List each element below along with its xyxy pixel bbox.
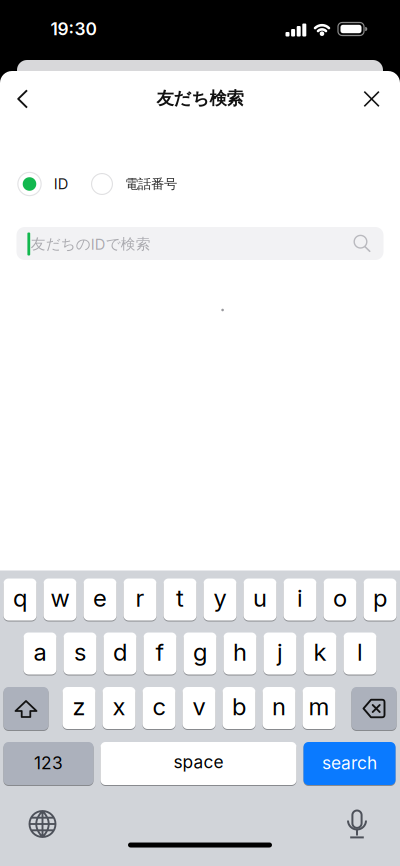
button[interactable]: j xyxy=(263,632,296,675)
button[interactable]: l xyxy=(343,632,376,675)
staticText: c xyxy=(152,692,165,720)
button[interactable]: b xyxy=(222,686,255,729)
staticText: j xyxy=(277,638,283,666)
staticText: r xyxy=(135,584,144,612)
staticText: 友だちのIDで検索 xyxy=(31,235,151,253)
staticText: search xyxy=(322,753,377,773)
staticText: z xyxy=(72,692,85,720)
button[interactable] xyxy=(335,802,379,846)
button[interactable]: q xyxy=(3,578,36,621)
staticText: w xyxy=(50,584,69,612)
button[interactable]: space xyxy=(100,741,296,785)
staticText: n xyxy=(272,692,286,720)
staticText: m xyxy=(308,692,329,720)
staticText: o xyxy=(333,584,347,612)
button[interactable]: p xyxy=(363,578,396,621)
button[interactable]: f xyxy=(143,632,176,675)
button[interactable]: m xyxy=(302,686,335,729)
button[interactable]: r xyxy=(123,578,156,621)
staticText: x xyxy=(112,692,125,720)
staticText: p xyxy=(373,584,387,612)
staticText: g xyxy=(193,638,207,666)
button[interactable]: 友だちのIDで検索 xyxy=(16,227,383,260)
button[interactable] xyxy=(20,802,64,846)
staticText: u xyxy=(253,584,267,612)
button[interactable]: t xyxy=(163,578,196,621)
staticText: 友だち検索 xyxy=(156,88,243,109)
button[interactable] xyxy=(1,77,45,121)
button[interactable]: a xyxy=(23,632,56,675)
button[interactable]: v xyxy=(182,686,215,729)
staticText: ID xyxy=(54,175,69,193)
staticText: l xyxy=(357,638,363,666)
button[interactable] xyxy=(3,686,48,730)
button[interactable]: ID xyxy=(17,168,69,200)
staticText: h xyxy=(233,638,247,666)
button[interactable]: c xyxy=(142,686,175,729)
button[interactable]: w xyxy=(43,578,76,621)
staticText: q xyxy=(13,584,27,612)
staticText: f xyxy=(155,638,164,666)
button[interactable] xyxy=(350,77,394,121)
button[interactable]: i xyxy=(283,578,316,621)
button[interactable]: x xyxy=(102,686,135,729)
button[interactable]: d xyxy=(103,632,136,675)
button[interactable]: s xyxy=(63,632,96,675)
staticText: space xyxy=(173,752,223,772)
staticText: y xyxy=(213,584,226,612)
staticText: d xyxy=(113,638,127,666)
button[interactable]: y xyxy=(203,578,236,621)
button[interactable]: search xyxy=(303,741,395,785)
button[interactable]: n xyxy=(262,686,295,729)
button[interactable]: h xyxy=(223,632,256,675)
button[interactable] xyxy=(351,686,396,730)
button[interactable]: 123 xyxy=(3,741,93,785)
button[interactable]: u xyxy=(243,578,276,621)
button[interactable]: z xyxy=(62,686,95,729)
button[interactable]: 電話番号 xyxy=(91,168,177,200)
button[interactable]: k xyxy=(303,632,336,675)
button[interactable]: o xyxy=(323,578,356,621)
staticText: s xyxy=(74,638,86,666)
staticText: i xyxy=(297,584,303,612)
button[interactable]: e xyxy=(83,578,116,621)
staticText: e xyxy=(93,584,107,612)
staticText: a xyxy=(33,638,46,666)
staticText: b xyxy=(232,692,246,720)
staticText: t xyxy=(176,584,184,612)
button[interactable]: g xyxy=(183,632,216,675)
staticText: k xyxy=(313,638,326,666)
staticText: v xyxy=(192,692,205,720)
staticText: 19:30 xyxy=(50,19,96,39)
staticText: 電話番号 xyxy=(125,176,177,192)
staticText: 123 xyxy=(34,753,63,773)
